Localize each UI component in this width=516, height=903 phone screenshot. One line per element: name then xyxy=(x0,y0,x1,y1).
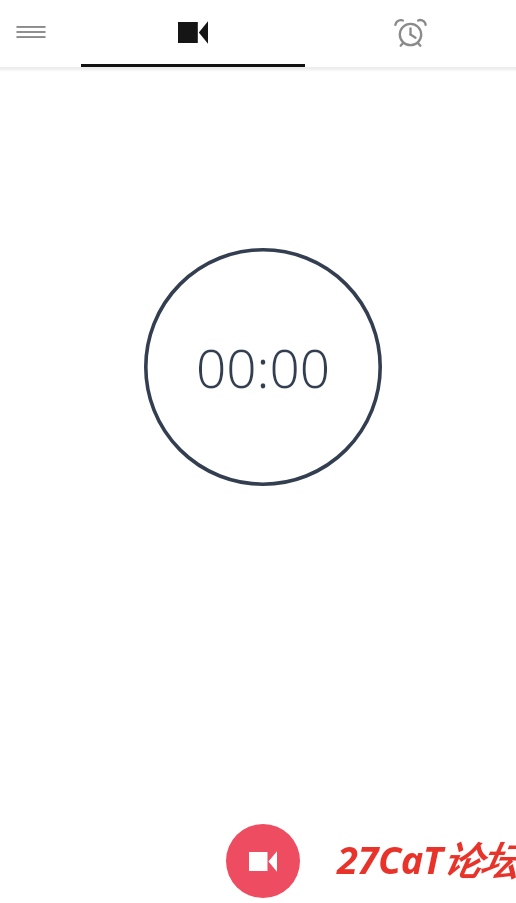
button[interactable]: Alarm tab xyxy=(305,0,516,64)
button[interactable]: Start recording xyxy=(226,824,300,898)
staticText: 27CaT论坛 xyxy=(337,833,516,885)
staticText: 00:00 xyxy=(196,331,330,403)
button[interactable]: Timer 00:00 xyxy=(144,248,382,486)
button[interactable]: Menu xyxy=(4,5,58,59)
button[interactable]: Recorder tab xyxy=(81,0,305,64)
